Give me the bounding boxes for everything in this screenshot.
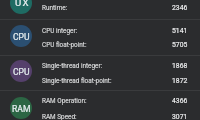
staticText: Single-thread float-point: <box>42 77 112 85</box>
button[interactable]: Single-thread CPU benchmark score <box>10 60 32 82</box>
button[interactable]: CPU benchmark score <box>10 25 32 47</box>
staticText: RAM Operation: <box>42 97 87 105</box>
staticText: CPU <box>13 67 30 77</box>
staticText: 3071 <box>172 113 188 120</box>
staticText: CPU integer: <box>42 27 78 35</box>
button[interactable]: Single-thread float-point: <box>42 74 188 88</box>
staticText: CPU <box>13 32 30 42</box>
staticText: 5705 <box>172 41 188 49</box>
button[interactable]: RAM Operation: <box>42 94 188 108</box>
button[interactable]: CPU float-point: <box>42 38 188 52</box>
staticText: 4366 <box>172 97 188 105</box>
button[interactable]: Single-thread integer: <box>42 59 188 73</box>
staticText: Single-thread integer: <box>42 62 103 70</box>
staticText: RAM Speed: <box>42 113 77 120</box>
staticText: CPU float-point: <box>42 41 87 49</box>
staticText: 1868 <box>172 62 188 70</box>
staticText: 2346 <box>172 4 188 12</box>
button[interactable]: UX benchmark score <box>10 0 32 14</box>
staticText: RAM <box>12 104 31 114</box>
button[interactable]: RAM benchmark score <box>10 97 32 119</box>
button[interactable]: Runtime: <box>42 1 188 15</box>
staticText: 5141 <box>172 27 188 35</box>
button[interactable]: CPU integer: <box>42 24 188 38</box>
staticText: Runtime: <box>42 4 68 12</box>
button[interactable]: RAM Speed: <box>42 110 188 120</box>
staticText: 1872 <box>172 77 188 85</box>
staticText: UX <box>15 0 30 8</box>
